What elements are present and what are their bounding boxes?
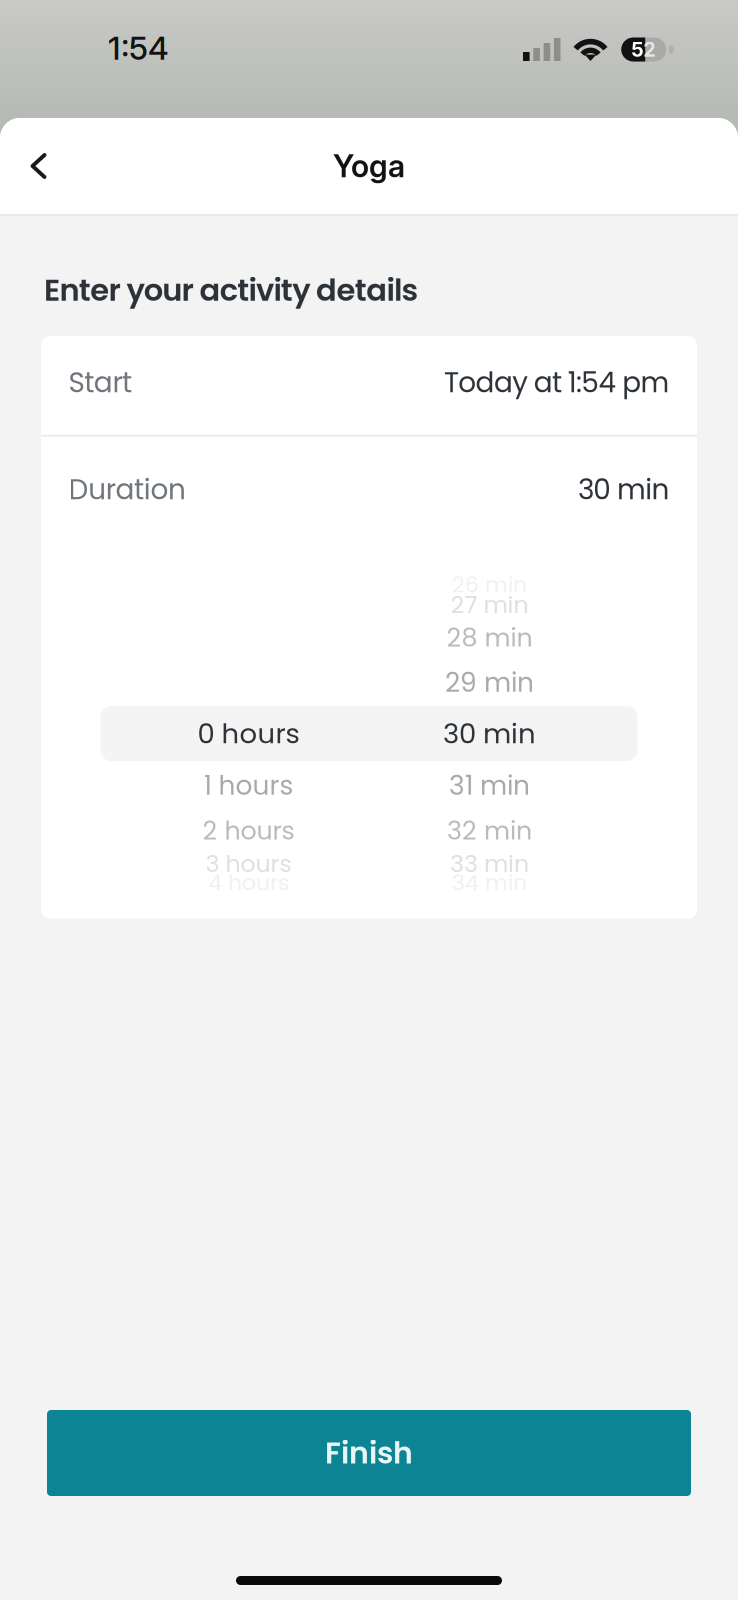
- staticText: Finish: [325, 1432, 413, 1474]
- staticText: 28 min: [446, 620, 532, 655]
- staticText: 30 min: [443, 714, 536, 753]
- button[interactable]: Finish: [47, 1410, 691, 1496]
- staticText: 3 hours: [205, 847, 291, 880]
- staticText: 32 min: [447, 813, 532, 848]
- staticText: 31 min: [449, 767, 530, 804]
- staticText: Start: [68, 363, 132, 402]
- staticText: 27 min: [450, 588, 528, 621]
- staticText: Today at 1:54 pm: [444, 363, 669, 402]
- staticText: 5: [631, 37, 643, 62]
- staticText: 1:54: [108, 29, 169, 67]
- staticText: Enter your activity details: [44, 269, 418, 311]
- staticText: 33 min: [450, 847, 529, 880]
- staticText: 1 hours: [203, 767, 293, 804]
- staticText: Yoga: [333, 147, 405, 184]
- staticText: 0 hours: [197, 714, 299, 753]
- staticText: Duration: [68, 470, 186, 509]
- staticText: 30 min: [578, 470, 669, 509]
- staticText: 34 min: [452, 867, 527, 898]
- staticText: 29 min: [445, 664, 534, 701]
- staticText: 26 min: [452, 569, 527, 600]
- staticText: 2: [643, 37, 656, 62]
- staticText: 2 hours: [202, 813, 294, 848]
- staticText: 4 hours: [208, 867, 289, 898]
- button[interactable]: Back: [3, 131, 73, 201]
